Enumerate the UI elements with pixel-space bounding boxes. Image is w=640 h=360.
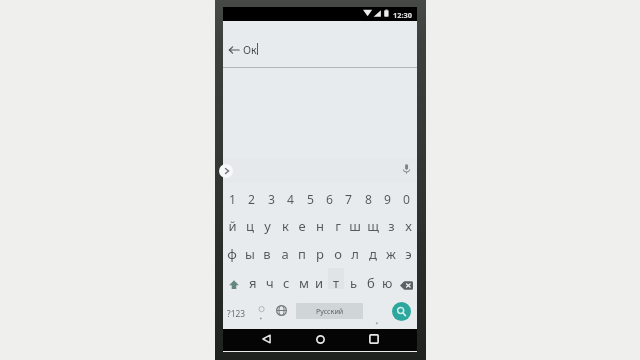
button[interactable]: Русский [296, 303, 363, 319]
button[interactable]: ш [346, 213, 364, 239]
staticText: щ [367, 217, 379, 235]
staticText: 1 [229, 191, 236, 208]
staticText: ?123 [227, 308, 246, 319]
staticText: я [249, 274, 257, 292]
button[interactable]: ф [223, 241, 241, 267]
button[interactable]: д [364, 241, 382, 267]
button[interactable]: 7 [339, 186, 358, 212]
button[interactable]: м [295, 270, 312, 296]
button[interactable]: б [362, 270, 379, 296]
button[interactable]: л [346, 241, 364, 267]
button[interactable]: 5 [301, 186, 320, 212]
staticText: н [316, 217, 324, 235]
staticText: Ок [243, 43, 257, 57]
staticText: ч [266, 274, 274, 292]
staticText: ю [382, 274, 393, 292]
button[interactable]: е [293, 213, 311, 239]
button[interactable]: Backspace [396, 272, 417, 298]
staticText: 9 [384, 191, 391, 208]
staticText: о [334, 245, 342, 263]
button[interactable]: э [399, 241, 417, 267]
staticText: ш [349, 217, 361, 235]
button[interactable]: 0 [397, 186, 416, 212]
button[interactable]: ж [382, 241, 400, 267]
button[interactable]: 2 [242, 186, 261, 212]
button[interactable]: х [399, 213, 417, 239]
button[interactable]: у [258, 213, 276, 239]
button[interactable]: я [244, 270, 261, 296]
staticText: ф [227, 245, 237, 263]
button[interactable]: 3 [262, 186, 281, 212]
button[interactable]: о [329, 241, 347, 267]
button[interactable]: г [329, 213, 347, 239]
button[interactable]: 1 [223, 186, 242, 212]
staticText: р [316, 245, 324, 263]
button[interactable]: ч [261, 270, 278, 296]
button[interactable]: в [258, 241, 276, 267]
staticText: к [282, 217, 289, 235]
staticText: й [228, 217, 237, 235]
button[interactable]: 4 [281, 186, 300, 212]
button[interactable]: Search [392, 302, 411, 321]
staticText: Русский [316, 306, 344, 316]
button[interactable]: з [382, 213, 400, 239]
button[interactable]: Back [257, 330, 275, 348]
staticText: х [405, 217, 412, 235]
button[interactable]: ы [241, 241, 259, 267]
staticText: 5 [307, 191, 314, 208]
staticText: ж [386, 245, 396, 263]
staticText: в [263, 245, 271, 263]
button[interactable]: Recent apps [365, 330, 383, 348]
button[interactable]: Change language [272, 298, 290, 322]
button[interactable]: а [276, 241, 294, 267]
button[interactable]: т [328, 270, 345, 296]
button[interactable]: с [278, 270, 295, 296]
button[interactable]: ь [345, 270, 362, 296]
staticText: 6 [326, 191, 333, 208]
button[interactable]: Home [311, 330, 329, 348]
staticText: 2 [248, 191, 255, 208]
button[interactable]: ю [379, 270, 396, 296]
staticText: и [315, 274, 324, 292]
button[interactable]: Shift [223, 272, 244, 298]
button[interactable]: 9 [378, 186, 397, 212]
button[interactable]: Back [223, 20, 417, 67]
button[interactable]: н [311, 213, 329, 239]
staticText: 8 [365, 191, 372, 208]
button[interactable]: 6 [320, 186, 339, 212]
staticText: а [281, 245, 289, 263]
staticText: ы [245, 245, 255, 263]
button[interactable]: и [311, 270, 328, 296]
button[interactable]: р [311, 241, 329, 267]
staticText: м [299, 274, 309, 292]
button[interactable]: Voice input [401, 163, 412, 174]
staticText: б [367, 274, 375, 292]
button[interactable]: п [293, 241, 311, 267]
staticText: ц [246, 217, 254, 235]
button[interactable]: 8 [359, 186, 378, 212]
staticText: г [335, 217, 341, 235]
button[interactable]: Emoji [252, 298, 270, 322]
staticText: з [388, 217, 395, 235]
staticText: т [333, 274, 340, 292]
button[interactable]: Show suggestions [219, 164, 233, 178]
staticText: д [369, 245, 377, 263]
staticText: е [298, 217, 306, 235]
button[interactable]: щ [364, 213, 382, 239]
staticText: у [264, 217, 271, 235]
button[interactable]: к [276, 213, 294, 239]
button[interactable]: ц [241, 213, 259, 239]
button[interactable]: й [223, 213, 241, 239]
staticText: л [351, 245, 359, 263]
staticText: ь [350, 274, 358, 292]
button[interactable]: ?123 [223, 301, 249, 325]
staticText: 0 [403, 191, 410, 208]
staticText: 12:30 [393, 10, 412, 20]
staticText: п [298, 245, 306, 263]
staticText: 7 [345, 191, 352, 208]
button[interactable]: Back [228, 44, 240, 56]
staticText: э [405, 245, 412, 263]
staticText: с [283, 274, 290, 292]
staticText: 4 [287, 191, 294, 208]
